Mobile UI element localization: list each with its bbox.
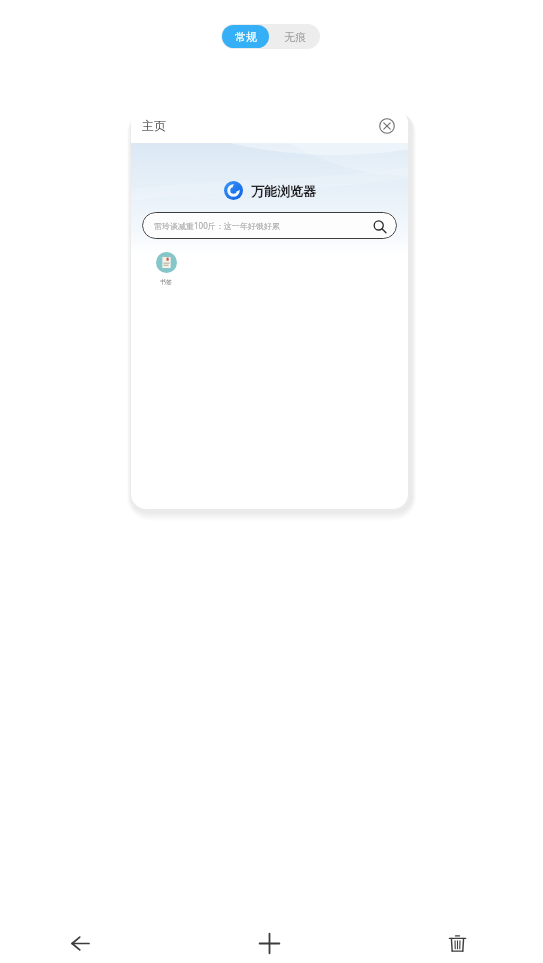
- button[interactable]: 书签: [147, 252, 185, 286]
- staticText: 书签: [160, 278, 172, 286]
- button[interactable]: 常规: [222, 25, 269, 48]
- staticText: 常规: [235, 30, 257, 44]
- button[interactable]: Search: [370, 217, 388, 235]
- button[interactable]: 雷玲谈减重100斤：这一年好饿好累: [142, 212, 397, 239]
- button[interactable]: 无痕: [270, 24, 320, 49]
- staticText: 雷玲谈减重100斤：这一年好饿好累: [154, 220, 280, 231]
- button[interactable]: Close all tabs: [436, 922, 478, 963]
- button[interactable]: Close tab: [376, 115, 398, 137]
- button[interactable]: New tab: [248, 922, 290, 963]
- button[interactable]: Back: [59, 922, 101, 963]
- staticText: 无痕: [284, 30, 306, 44]
- staticText: 万能浏览器: [251, 183, 316, 199]
- button[interactable]: 主页: [131, 108, 408, 509]
- staticText: 主页: [142, 118, 166, 133]
